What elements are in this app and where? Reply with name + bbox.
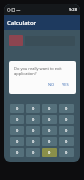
staticText: ○ □ — xyxy=(7,7,21,12)
staticText: YES xyxy=(62,82,69,87)
staticText: 0 xyxy=(65,150,68,155)
staticText: Do you really want to exit application? xyxy=(14,66,71,76)
staticText: 0 xyxy=(65,117,68,122)
button[interactable]: 0 xyxy=(59,148,74,157)
staticText: 0 xyxy=(48,117,51,122)
button[interactable]: 0 xyxy=(42,148,57,157)
button[interactable]: 0 xyxy=(10,115,24,124)
staticText: 0 xyxy=(65,128,68,133)
button[interactable]: YES xyxy=(60,80,71,89)
staticText: 0 xyxy=(65,139,68,144)
button[interactable]: 0 xyxy=(26,126,40,135)
button[interactable]: NO xyxy=(46,80,57,89)
button[interactable]: 0 xyxy=(26,137,40,146)
button[interactable]: 0 xyxy=(59,137,74,146)
staticText: 0 xyxy=(48,106,51,111)
staticText: 0 xyxy=(16,106,19,111)
button[interactable]: 0 xyxy=(26,104,40,113)
staticText: 0 xyxy=(16,117,19,122)
staticText: 0 xyxy=(16,139,19,144)
button[interactable]: 0 xyxy=(10,104,24,113)
staticText: 0 xyxy=(32,117,35,122)
button[interactable]: 0 xyxy=(42,104,57,113)
staticText: 0 xyxy=(32,128,35,133)
button[interactable]: 0 xyxy=(26,115,40,124)
button[interactable]: 0 xyxy=(59,104,74,113)
button[interactable]: 0 xyxy=(42,137,57,146)
staticText: 0 xyxy=(32,139,35,144)
button[interactable] xyxy=(9,35,23,46)
button[interactable]: 0 xyxy=(42,115,57,124)
staticText: 0 xyxy=(65,106,68,111)
staticText: 9:28 xyxy=(69,7,77,12)
button[interactable]: 0 xyxy=(59,126,74,135)
button[interactable]: 0 xyxy=(26,148,40,157)
staticText: 0 xyxy=(16,128,19,133)
button[interactable]: 0 xyxy=(42,126,57,135)
staticText: 0 xyxy=(48,150,51,155)
button[interactable]: 0 xyxy=(59,115,74,124)
staticText: 0 xyxy=(48,139,51,144)
staticText: NO xyxy=(48,82,55,87)
button[interactable]: 0 xyxy=(10,137,24,146)
staticText: 0 xyxy=(16,150,19,155)
staticText: 0 xyxy=(32,150,35,155)
staticText: 0 xyxy=(48,128,51,133)
button[interactable]: 0 xyxy=(10,148,24,157)
staticText: Calculator xyxy=(7,19,37,27)
button[interactable]: 0 xyxy=(10,126,24,135)
staticText: 0 xyxy=(32,106,35,111)
